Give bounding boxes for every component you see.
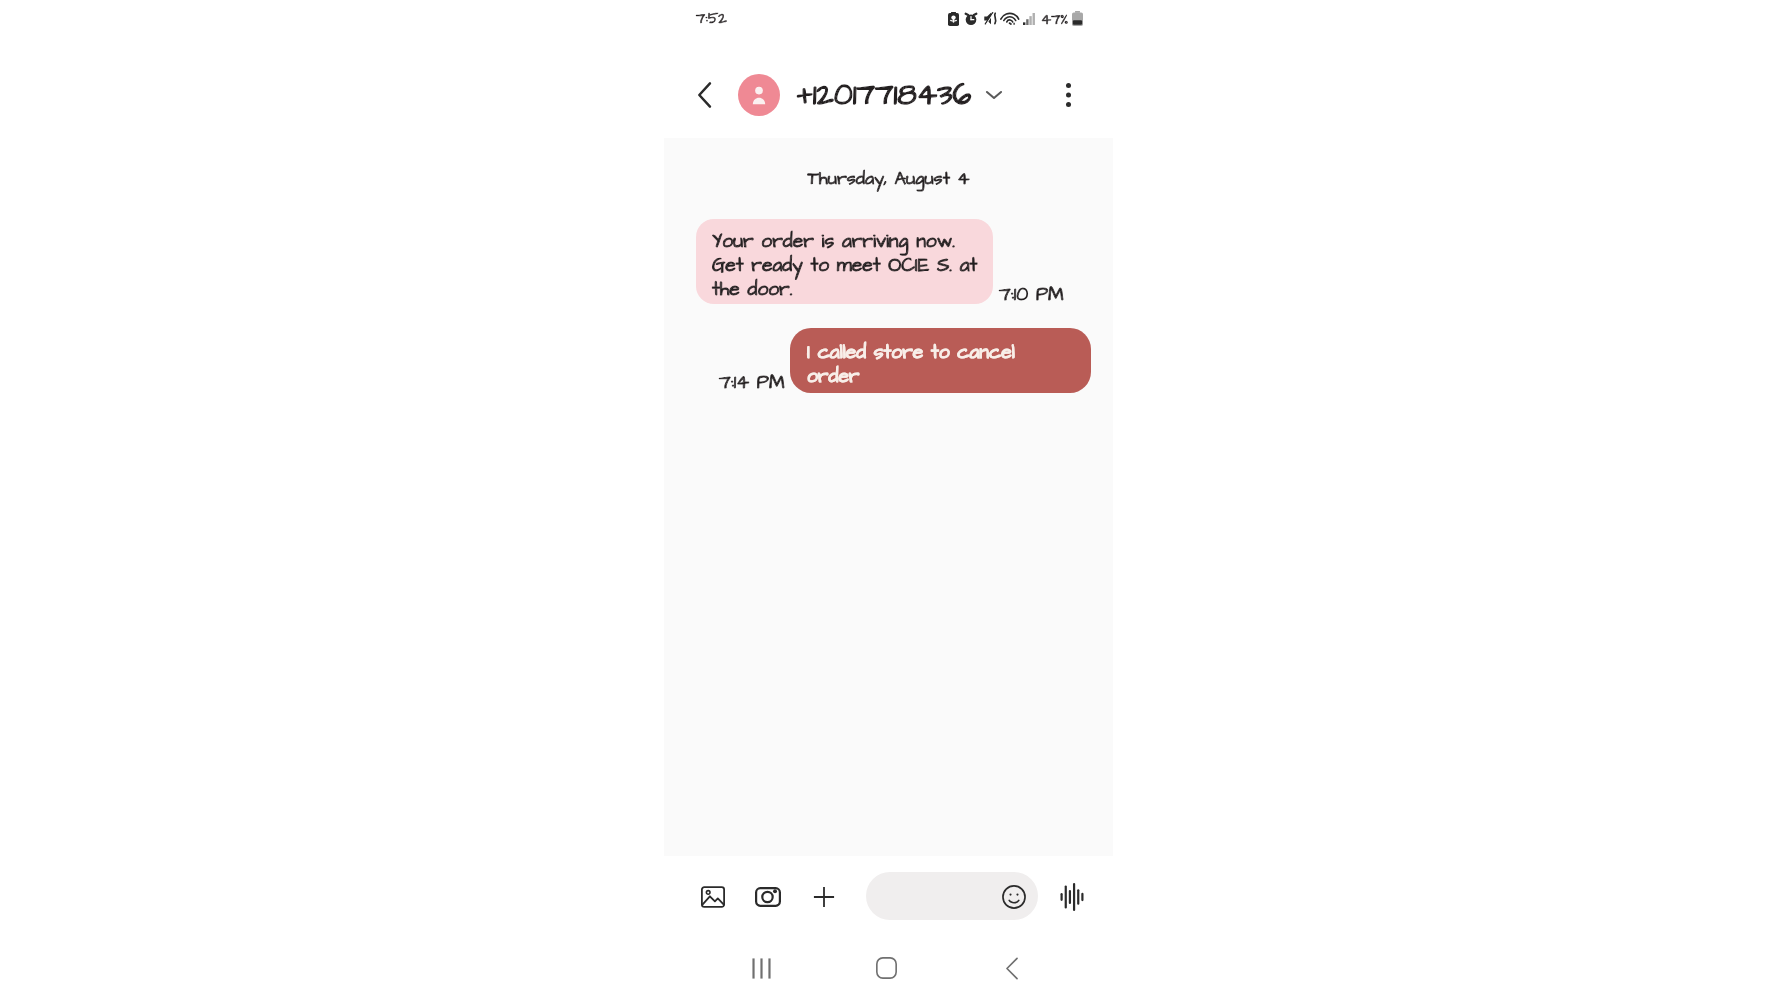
button[interactable]: Camera	[744, 873, 792, 921]
staticText: 7:10 PM	[999, 281, 1064, 307]
staticText: Your order is arriving now. Get ready to…	[712, 228, 978, 303]
button[interactable]: +12017718436	[797, 72, 1002, 118]
staticText: I called store to cancel order	[807, 339, 1015, 390]
button[interactable]: Back	[683, 73, 727, 117]
button[interactable]: More options	[1046, 73, 1090, 117]
button[interactable]: Add	[800, 873, 848, 921]
staticText: +12017718436	[797, 74, 972, 116]
button[interactable]: Voice message	[1048, 873, 1096, 921]
staticText: 7:52	[696, 8, 727, 29]
staticText: Thursday, August 4	[664, 166, 1113, 191]
button[interactable]: Back	[987, 944, 1035, 992]
staticText: 7:14 PM	[719, 369, 785, 395]
staticText: 47%	[1041, 9, 1069, 30]
staticText: Your order is arriving now. Get ready to…	[712, 228, 978, 303]
button[interactable]: Your order is arriving now. Get ready to…	[696, 219, 993, 304]
staticText: +12017718436	[797, 74, 972, 116]
button[interactable]: Enter message	[866, 872, 1038, 920]
button[interactable]: Emoji	[1002, 885, 1026, 909]
staticText: 7:52	[696, 8, 727, 29]
staticText: Thursday, August 4	[664, 166, 1113, 191]
staticText: 7:10 PM	[999, 281, 1064, 307]
button[interactable]: I called store to cancel order	[790, 328, 1091, 393]
staticText: 7:14 PM	[719, 369, 785, 395]
button[interactable]: Recents	[737, 944, 785, 992]
button[interactable]: Home	[862, 944, 910, 992]
staticText: I called store to cancel order	[807, 339, 1015, 390]
button[interactable]: Gallery	[689, 873, 737, 921]
button[interactable]: Contact photo	[738, 74, 780, 116]
staticText: 47%	[1041, 9, 1069, 30]
